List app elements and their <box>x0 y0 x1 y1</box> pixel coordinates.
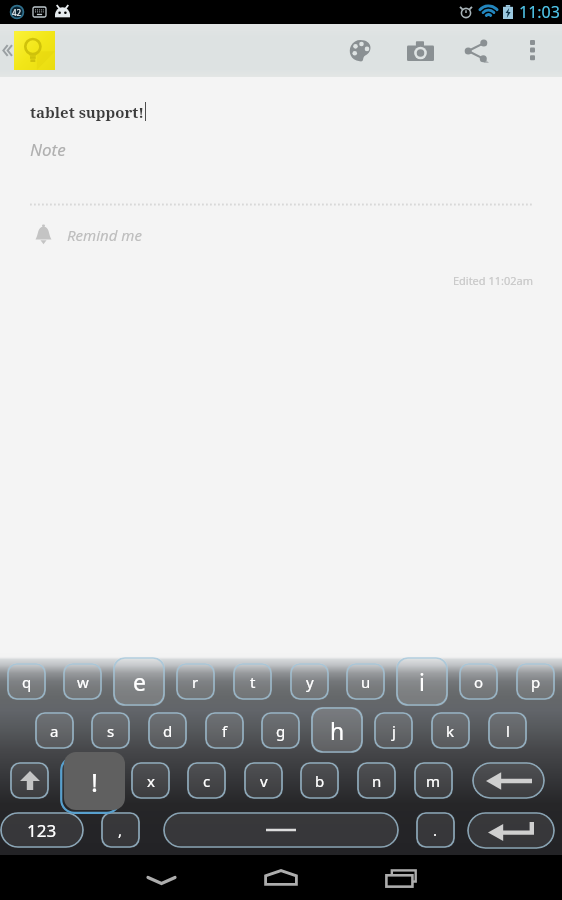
staticText: a <box>50 721 59 741</box>
staticText: p <box>531 672 541 692</box>
button[interactable]: e <box>113 657 165 706</box>
button[interactable]: b <box>300 762 339 799</box>
button[interactable]: Share <box>449 24 503 77</box>
button[interactable]: h <box>311 707 363 753</box>
button[interactable]: y <box>290 663 329 700</box>
staticText: q <box>22 672 32 692</box>
staticText: . <box>433 820 438 840</box>
button[interactable]: Home <box>221 855 341 900</box>
button[interactable]: ! <box>64 752 125 810</box>
staticText: d <box>163 721 173 741</box>
staticText: k <box>446 721 455 741</box>
button[interactable]: v <box>244 762 283 799</box>
staticText: g <box>276 721 286 741</box>
staticText: Remind me <box>67 225 142 245</box>
staticText: t <box>250 672 256 692</box>
staticText: h <box>330 715 345 746</box>
staticText: s <box>107 721 115 741</box>
staticText: u <box>361 672 371 692</box>
button[interactable]: More options <box>505 24 559 77</box>
staticText: j <box>392 721 396 741</box>
button[interactable]: l <box>488 712 527 749</box>
button[interactable]: Color <box>333 24 387 77</box>
staticText: l <box>506 721 510 741</box>
button[interactable]: m <box>414 762 453 799</box>
staticText: v <box>260 771 268 791</box>
staticText: c <box>203 771 211 791</box>
button[interactable]: k <box>431 712 470 749</box>
button[interactable]: s <box>91 712 130 749</box>
button[interactable]: Hide keyboard <box>101 855 221 900</box>
staticText: f <box>222 721 228 741</box>
button[interactable]: a <box>35 712 74 749</box>
button[interactable]: . <box>416 812 455 848</box>
button[interactable]: w <box>63 663 102 700</box>
staticText: r <box>192 672 199 692</box>
staticText: y <box>306 672 314 692</box>
button[interactable]: Space <box>163 812 399 848</box>
button[interactable]: Remind me <box>34 220 234 250</box>
button[interactable]: Back <box>0 24 14 77</box>
staticText: m <box>426 771 441 791</box>
button[interactable]: f <box>205 712 244 749</box>
button[interactable]: r <box>176 663 215 700</box>
staticText: , <box>118 820 123 840</box>
button[interactable]: Enter <box>467 812 555 849</box>
button[interactable]: Keep <box>14 31 55 70</box>
staticText: e <box>133 666 146 697</box>
button[interactable]: tablet support! <box>30 102 146 122</box>
button[interactable]: j <box>374 712 413 749</box>
staticText: ! <box>91 764 98 799</box>
button[interactable]: o <box>459 663 498 700</box>
button[interactable]: d <box>148 712 187 749</box>
staticText: x <box>147 771 155 791</box>
button[interactable]: t <box>233 663 272 700</box>
staticText: w <box>77 672 89 692</box>
button[interactable]: Shift <box>10 762 49 799</box>
staticText: 42 <box>12 7 22 18</box>
button[interactable]: Camera <box>393 24 447 77</box>
button[interactable]: n <box>357 762 396 799</box>
button[interactable]: c <box>187 762 226 799</box>
button[interactable]: q <box>7 663 46 700</box>
staticText: o <box>474 672 484 692</box>
staticText: tablet support! <box>30 102 145 122</box>
staticText: n <box>372 771 382 791</box>
button[interactable]: g <box>261 712 300 749</box>
staticText: i <box>419 666 425 697</box>
button[interactable]: , <box>101 812 140 848</box>
button[interactable]: Backspace <box>472 762 545 799</box>
button[interactable]: 123 <box>0 812 84 848</box>
button[interactable]: x <box>131 762 170 799</box>
button[interactable]: u <box>346 663 385 700</box>
button[interactable]: p <box>516 663 555 700</box>
staticText: Note <box>30 138 66 161</box>
staticText: 123 <box>27 819 57 842</box>
staticText: 11:03 <box>519 1 560 23</box>
button[interactable]: Recents <box>340 855 460 900</box>
staticText: b <box>315 771 325 791</box>
button[interactable]: i <box>396 657 448 706</box>
staticText: Edited 11:02am <box>0 273 533 288</box>
